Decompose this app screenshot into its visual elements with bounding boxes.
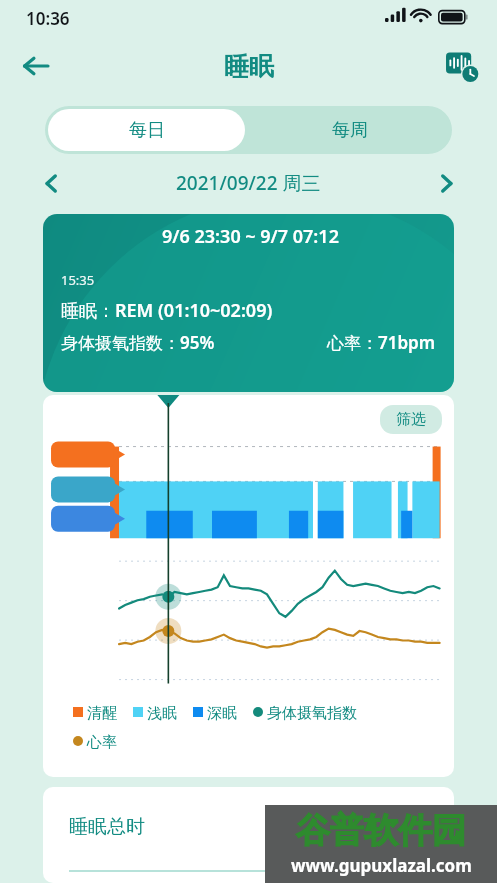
button[interactable]: 筛选 [380,405,442,434]
button[interactable]: Next day [429,166,463,200]
staticText: 深眠 [203,702,237,722]
staticText: 9/6 23:30 ~ 9/7 07:12 [61,224,440,249]
button[interactable]: Sleep records [441,45,483,87]
staticText: 2021/09/22 周三 [176,170,321,196]
staticText: 睡眠：REM (01:10~02:09) [61,298,273,323]
button[interactable]: 每周 [248,106,452,154]
button[interactable]: 9/6 23:30 ~ 9/7 07:12 [43,214,454,392]
staticText: 身体摄氧指数 [263,702,357,722]
staticText: 谷普软件园 [296,809,466,852]
staticText: 浅眠 [143,702,177,722]
staticText: 身体摄氧指数：95% [61,331,215,354]
button[interactable]: Previous day [34,166,68,200]
button[interactable]: 每日 [48,109,245,151]
staticText: 睡眠 [224,51,274,82]
staticText: 清醒 [83,702,117,722]
staticText: 心率：71bpm [327,331,436,354]
staticText: 每日 [129,119,165,142]
staticText: 15:35 [61,271,95,289]
staticText: www.gupuxlazal.com [291,854,472,877]
staticText: 每周 [332,119,368,142]
staticText: 筛选 [396,410,426,429]
button[interactable]: Back [14,44,58,88]
staticText: 10:36 [26,7,70,30]
staticText: 睡眠总时 [69,815,145,839]
staticText: 心率 [83,731,117,751]
button[interactable]: 睡眠总时 [43,787,454,883]
